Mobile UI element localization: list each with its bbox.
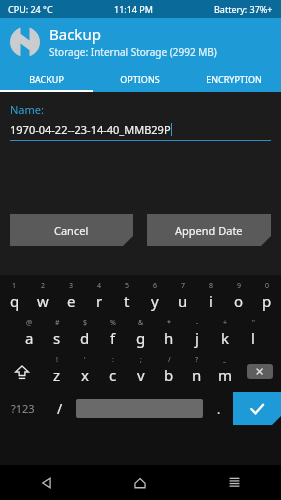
staticText: 9 (237, 281, 242, 291)
staticText: l (251, 328, 255, 348)
staticText: d (80, 328, 90, 348)
button[interactable]: . (205, 390, 233, 427)
staticText: / (168, 355, 171, 365)
button[interactable]: 9 (225, 279, 253, 316)
button[interactable]: % (99, 316, 127, 353)
button[interactable]: Cancel (10, 214, 133, 246)
staticText: $ (83, 318, 88, 328)
button[interactable]: / (46, 390, 74, 427)
staticText: 5 (125, 281, 130, 291)
button[interactable]: ? (183, 353, 211, 390)
staticText: BACKUP (29, 73, 64, 85)
staticText: y (151, 291, 159, 311)
button[interactable]: OPTIONS (93, 65, 187, 92)
staticText: c (109, 365, 117, 385)
button[interactable]: - (183, 316, 211, 353)
staticText: b (164, 365, 174, 385)
button[interactable]: 6 (141, 279, 169, 316)
staticText: / (57, 399, 63, 418)
staticText: Backup (49, 24, 101, 44)
staticText: ?123 (11, 401, 35, 416)
staticText: u (178, 291, 188, 311)
staticText: x (81, 365, 89, 385)
staticText: r (96, 291, 103, 311)
button[interactable]: 5 (113, 279, 141, 316)
button[interactable]: ' (71, 353, 99, 390)
staticText: 1 (12, 281, 17, 291)
staticText: Name: (10, 102, 44, 117)
staticText: h (164, 328, 174, 348)
staticText: Battery: 37%+ (214, 3, 273, 15)
staticText: q (10, 291, 20, 311)
button[interactable]: Enter (233, 392, 281, 425)
button[interactable]: Home (93, 465, 187, 500)
staticText: " (252, 318, 255, 328)
button[interactable]: ?123 (0, 390, 46, 427)
staticText: * (167, 318, 171, 328)
staticText: ! (56, 355, 58, 365)
staticText: ENCRYPTION (206, 73, 262, 85)
staticText: # (55, 318, 60, 328)
staticText: - (196, 318, 199, 328)
button[interactable]: & (127, 316, 155, 353)
staticText: 11:14 PM (114, 3, 153, 15)
staticText: 1970-04-22--23-14-40_MMB29P (10, 122, 171, 137)
staticText: + (223, 318, 228, 328)
button[interactable]: # (43, 316, 71, 353)
staticText: n (192, 365, 202, 385)
staticText: 0 (265, 281, 270, 291)
staticText: & (138, 318, 144, 328)
staticText: s (53, 328, 61, 348)
button[interactable]: 3 (57, 279, 85, 316)
staticText: e (67, 291, 76, 311)
staticText: 6 (153, 281, 158, 291)
staticText: z (53, 365, 61, 385)
button[interactable]: @ (15, 316, 43, 353)
button[interactable]: " (239, 316, 267, 353)
button[interactable]: : (99, 353, 127, 390)
button[interactable]: ; (127, 353, 155, 390)
button[interactable]: Shift (0, 353, 43, 390)
button[interactable]: 8 (197, 279, 225, 316)
staticText: ; (140, 355, 142, 365)
staticText: Storage: Internal Storage (2992 MB) (49, 45, 217, 59)
staticText: j (195, 328, 199, 348)
button[interactable]: ENCRYPTION (187, 65, 281, 92)
staticText: w (37, 291, 49, 311)
staticText: 4 (97, 281, 102, 291)
button[interactable]: 4 (85, 279, 113, 316)
staticText: @ (26, 318, 33, 328)
button[interactable]: Backspace (239, 353, 281, 390)
staticText: f (110, 328, 116, 348)
staticText: p (262, 291, 272, 311)
staticText: ⨯ (255, 365, 265, 378)
button[interactable]: + (211, 316, 239, 353)
button[interactable]: _ (211, 353, 239, 390)
button[interactable]: * (155, 316, 183, 353)
button[interactable]: $ (71, 316, 99, 353)
staticText: 8 (209, 281, 214, 291)
staticText: t (124, 291, 130, 311)
staticText: : (112, 355, 114, 365)
button[interactable]: Back (0, 465, 93, 500)
staticText: Append Date (175, 223, 243, 238)
button[interactable]: 7 (169, 279, 197, 316)
staticText: i (209, 291, 213, 311)
button[interactable]: Recent apps (187, 465, 281, 500)
staticText: CPU: 24 °C (8, 3, 53, 15)
button[interactable]: / (155, 353, 183, 390)
button[interactable]: 1 (0, 279, 29, 316)
staticText: o (234, 291, 244, 311)
button[interactable]: BACKUP (0, 65, 93, 92)
button[interactable]: ! (43, 353, 71, 390)
staticText: % (110, 318, 116, 328)
button[interactable]: 0 (253, 279, 281, 316)
staticText: . (217, 401, 221, 417)
staticText: 7 (181, 281, 186, 291)
button[interactable]: Append Date (147, 214, 271, 246)
button[interactable]: 2 (29, 279, 57, 316)
staticText: ' (84, 355, 86, 365)
staticText: _ (223, 355, 227, 365)
staticText: 3 (69, 281, 74, 291)
